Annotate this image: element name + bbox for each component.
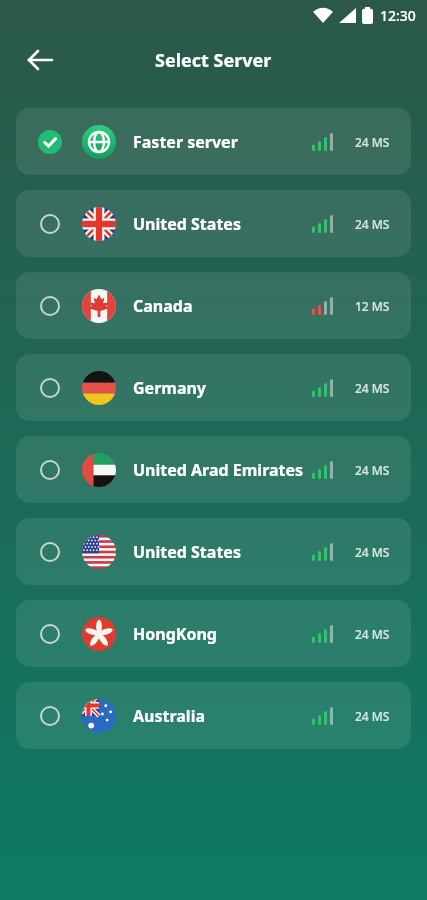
button[interactable]: Canada <box>16 272 411 339</box>
staticText: United States <box>133 213 241 235</box>
staticText: Faster server <box>133 131 238 153</box>
staticText: Germany <box>133 377 207 399</box>
button[interactable] <box>20 40 60 80</box>
button[interactable]: Faster server <box>16 108 411 175</box>
staticText: 24 MS <box>355 134 390 150</box>
staticText: 12 MS <box>355 298 390 314</box>
button[interactable]: HongKong <box>16 600 411 667</box>
staticText: 12:30 <box>380 6 416 25</box>
button[interactable]: United Arad Emirates <box>16 436 411 503</box>
staticText: 24 MS <box>355 544 390 560</box>
staticText: Canada <box>133 295 193 317</box>
staticText: 24 MS <box>355 462 390 478</box>
staticText: 24 MS <box>355 626 390 642</box>
button[interactable]: United States <box>16 190 411 257</box>
staticText: Australia <box>133 705 206 727</box>
staticText: 24 MS <box>355 380 390 396</box>
button[interactable]: Germany <box>16 354 411 421</box>
staticText: 24 MS <box>355 708 390 724</box>
staticText: United States <box>133 541 241 563</box>
staticText: United Arad Emirates <box>133 459 304 481</box>
staticText: 24 MS <box>355 216 390 232</box>
button[interactable]: Australia <box>16 682 411 749</box>
button[interactable]: United States <box>16 518 411 585</box>
staticText: HongKong <box>133 623 217 645</box>
staticText: Select Server <box>155 48 272 73</box>
